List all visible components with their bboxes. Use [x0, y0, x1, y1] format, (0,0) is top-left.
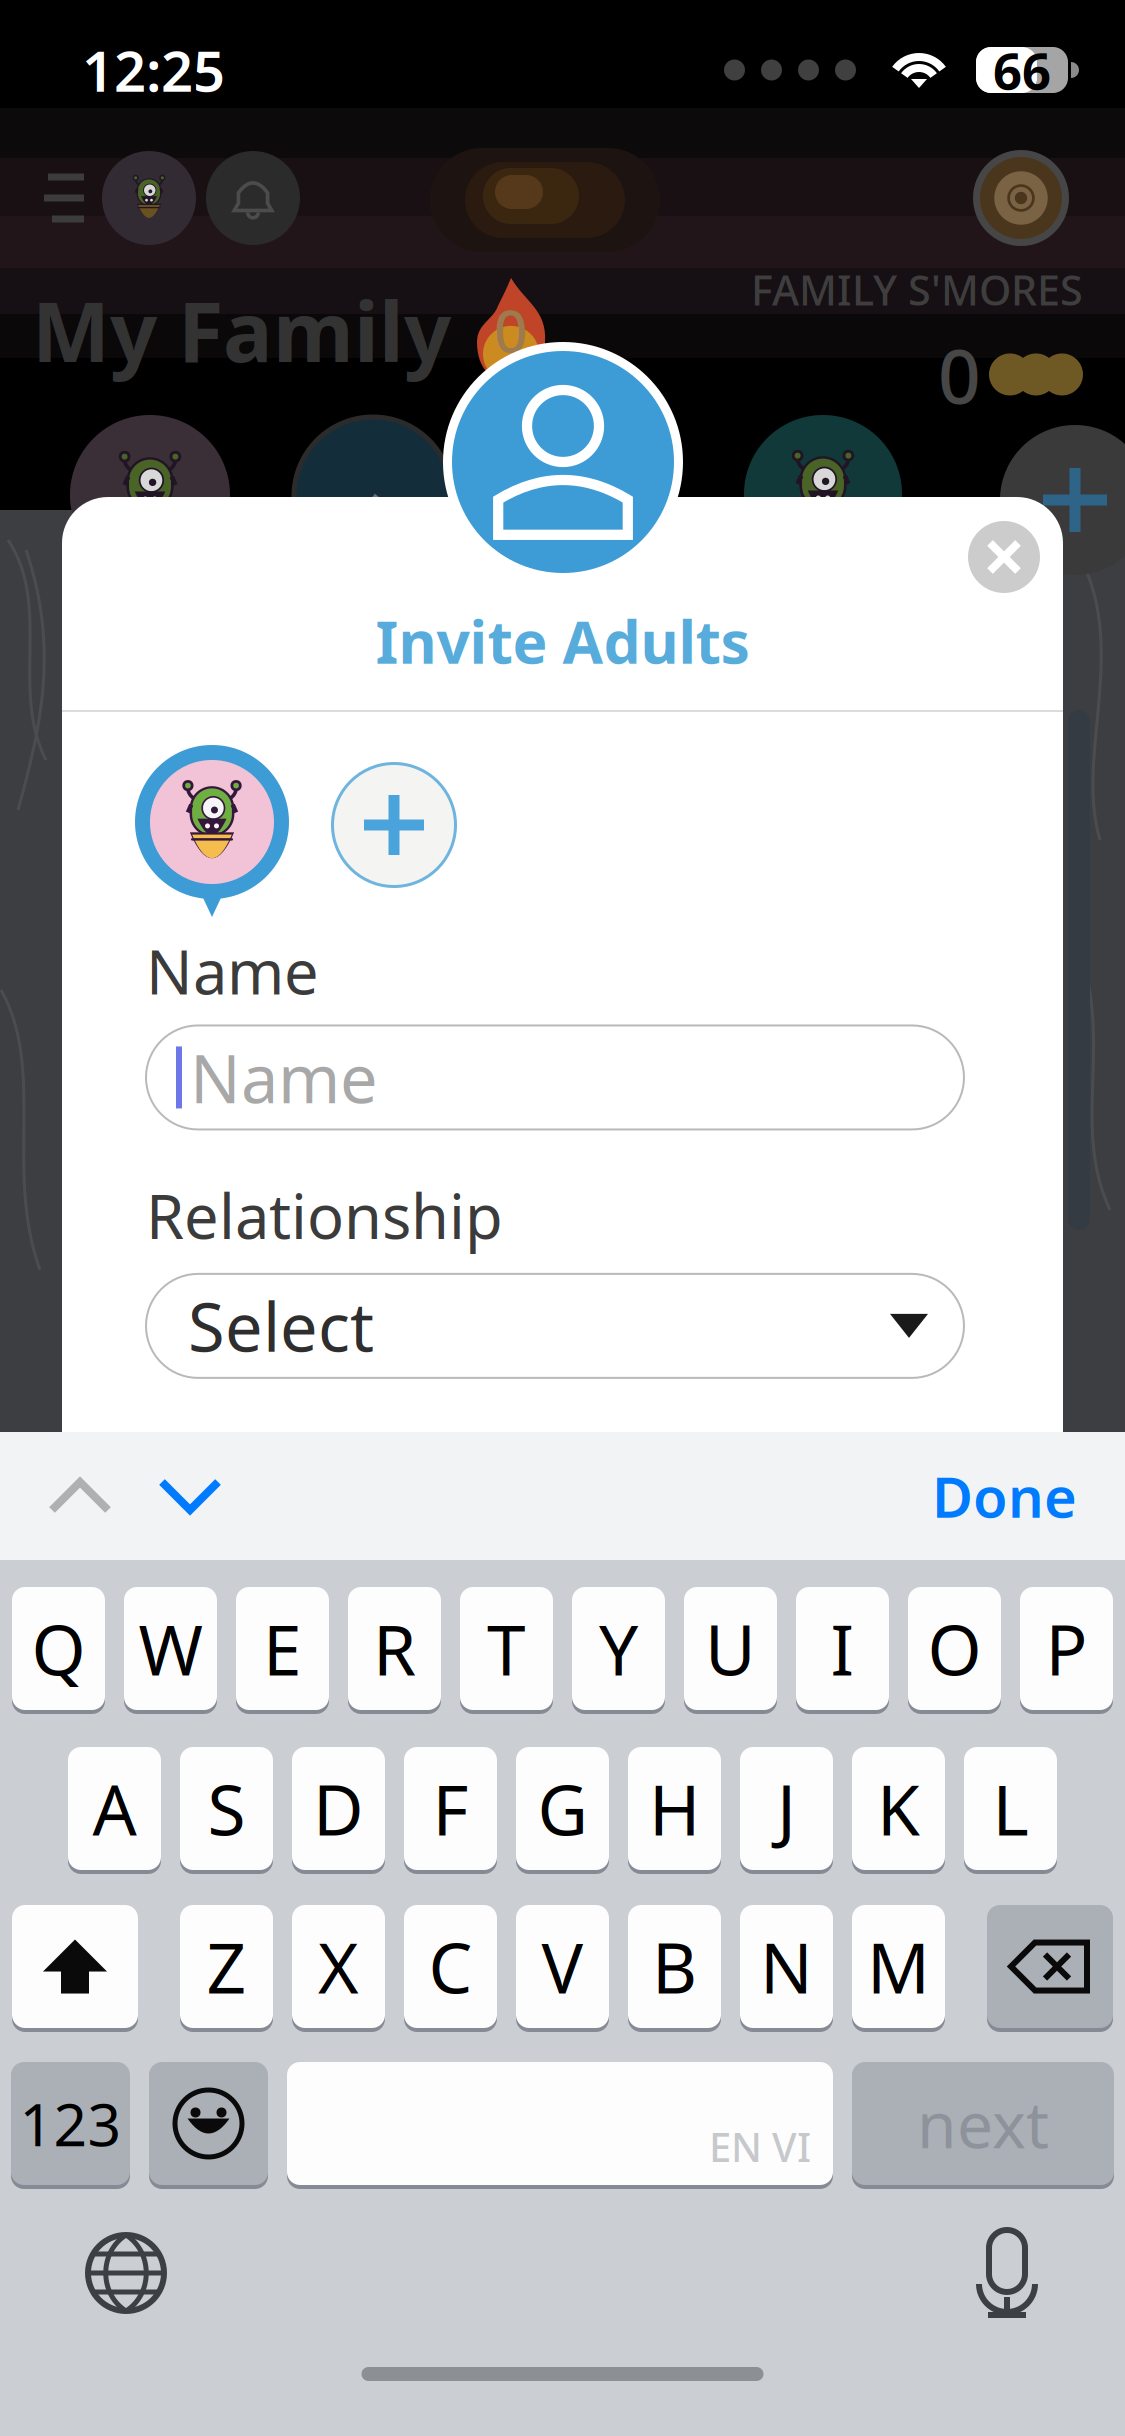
staticText: 66 — [993, 36, 1051, 104]
staticText: B — [652, 1920, 697, 2013]
button[interactable]: F — [404, 1745, 497, 1872]
button[interactable]: Add adult — [320, 751, 468, 899]
staticText: D — [313, 1762, 364, 1855]
staticText: J — [777, 1762, 796, 1855]
staticText: 0 — [494, 291, 528, 369]
button[interactable]: Previous field — [32, 1432, 128, 1560]
staticText: M — [867, 1920, 930, 2013]
button[interactable]: Switch keyboard — [82, 2229, 170, 2317]
staticText: Select — [188, 1282, 374, 1370]
button[interactable]: M — [852, 1903, 945, 2030]
button[interactable]: Select — [146, 1274, 964, 1378]
button[interactable]: 123 — [11, 2060, 130, 2187]
staticText: 123 — [19, 2084, 121, 2162]
button[interactable]: Space — [287, 2060, 833, 2187]
button[interactable]: Name — [146, 1025, 964, 1129]
staticText: H — [649, 1762, 700, 1855]
button[interactable]: W — [124, 1585, 217, 1712]
button[interactable]: Done — [914, 1429, 1095, 1563]
button[interactable]: V — [516, 1903, 609, 2030]
staticText: R — [373, 1602, 416, 1695]
button[interactable]: D — [292, 1745, 385, 1872]
staticText: U — [705, 1602, 756, 1695]
staticText: Name — [190, 1033, 378, 1122]
button[interactable]: R — [348, 1585, 441, 1712]
button[interactable]: B — [628, 1903, 721, 2030]
staticText: Name — [146, 930, 319, 1011]
button[interactable]: Q — [12, 1585, 105, 1712]
button[interactable]: Y — [572, 1585, 665, 1712]
staticText: 12:25 — [82, 33, 225, 107]
button[interactable]: A — [68, 1745, 161, 1872]
button[interactable]: X — [292, 1903, 385, 2030]
staticText: W — [138, 1602, 202, 1695]
staticText: T — [487, 1602, 526, 1695]
staticText: Done — [932, 1459, 1077, 1533]
staticText: K — [877, 1762, 920, 1855]
staticText: C — [428, 1920, 472, 2013]
button[interactable]: P — [1020, 1585, 1113, 1712]
button[interactable]: Next field — [142, 1432, 238, 1560]
button[interactable]: Dictation — [963, 2225, 1051, 2321]
button[interactable]: I — [796, 1585, 889, 1712]
button[interactable]: S — [180, 1745, 273, 1872]
button[interactable]: Emoji — [149, 2060, 268, 2187]
staticText: G — [537, 1762, 587, 1855]
staticText: X — [318, 1920, 359, 2013]
staticText: E — [263, 1602, 302, 1695]
staticText: P — [1045, 1602, 1087, 1695]
staticText: 0 — [938, 325, 981, 424]
button[interactable]: C — [404, 1903, 497, 2030]
button[interactable]: E — [236, 1585, 329, 1712]
button[interactable]: K — [852, 1745, 945, 1872]
staticText: I — [830, 1602, 854, 1695]
staticText: Invite Adults — [375, 602, 749, 680]
staticText: F — [432, 1762, 468, 1855]
button[interactable]: next — [852, 2060, 1114, 2187]
staticText: A — [92, 1762, 136, 1855]
button[interactable]: Select avatar — [135, 745, 289, 925]
staticText: V — [541, 1920, 583, 2013]
staticText: next — [917, 2081, 1049, 2166]
button[interactable]: Z — [180, 1903, 273, 2030]
staticText: My Family — [32, 275, 451, 385]
button[interactable]: Delete — [987, 1903, 1113, 2030]
staticText: FAMILY S'MORES — [751, 262, 1083, 317]
button[interactable]: L — [964, 1745, 1057, 1872]
button[interactable]: Close — [959, 512, 1049, 602]
staticText: Relationship — [146, 1174, 503, 1256]
staticText: Y — [599, 1602, 638, 1695]
staticText: Z — [206, 1920, 246, 2013]
button[interactable]: H — [628, 1745, 721, 1872]
button[interactable]: U — [684, 1585, 777, 1712]
button[interactable]: N — [740, 1903, 833, 2030]
staticText: O — [927, 1602, 981, 1695]
button[interactable]: G — [516, 1745, 609, 1872]
button[interactable]: J — [740, 1745, 833, 1872]
staticText: Q — [31, 1602, 85, 1695]
button[interactable]: Shift — [12, 1903, 138, 2030]
staticText: S — [207, 1762, 245, 1855]
staticText: N — [760, 1920, 813, 2013]
button[interactable]: T — [460, 1585, 553, 1712]
staticText: EN VI — [709, 2120, 811, 2173]
staticText: L — [992, 1762, 1028, 1855]
button[interactable]: O — [908, 1585, 1001, 1712]
